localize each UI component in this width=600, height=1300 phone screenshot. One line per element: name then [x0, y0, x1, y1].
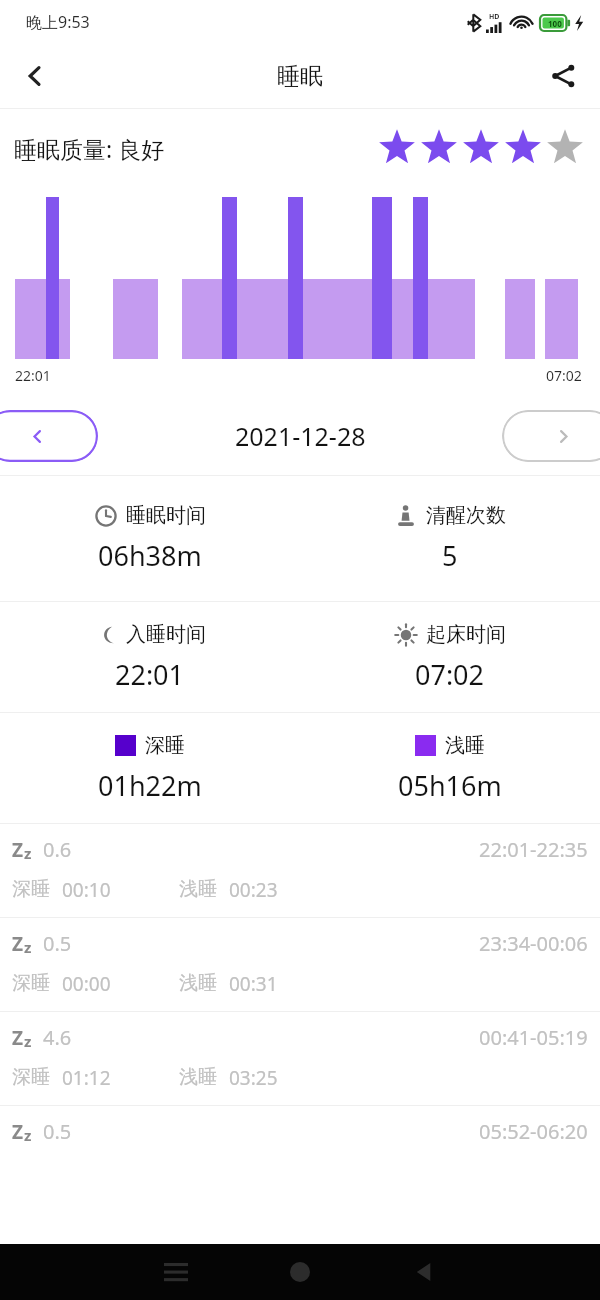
- staticText: 5: [442, 537, 458, 574]
- staticText: 睡眠时间: [126, 503, 206, 528]
- staticText: 深睡: [145, 733, 185, 758]
- button[interactable]: Z: [0, 1012, 600, 1105]
- staticText: 100: [548, 18, 562, 29]
- staticText: 07:02: [415, 656, 485, 693]
- button[interactable]: Back: [400, 1248, 448, 1296]
- staticText: 00:10: [62, 877, 111, 903]
- button[interactable]: Z: [0, 1106, 600, 1199]
- button[interactable]: Next day: [502, 410, 600, 462]
- button[interactable]: Share: [536, 49, 590, 103]
- staticText: 起床时间: [426, 622, 506, 647]
- staticText: 03:25: [229, 1065, 278, 1091]
- staticText: 4.6: [43, 1024, 72, 1051]
- staticText: 入睡时间: [126, 622, 206, 647]
- button[interactable]: Z: [0, 824, 600, 917]
- staticText: 05h16m: [398, 767, 502, 804]
- staticText: 00:41-05:19: [479, 1024, 588, 1051]
- staticText: Z: [12, 1025, 24, 1051]
- staticText: 睡眠质量: 良好: [14, 133, 165, 164]
- button[interactable]: 起床时间: [300, 602, 600, 712]
- button[interactable]: Z: [0, 918, 600, 1011]
- button[interactable]: 浅睡: [300, 713, 600, 823]
- staticText: HD: [489, 12, 500, 22]
- staticText: 深睡: [12, 971, 50, 995]
- button[interactable]: Home: [276, 1248, 324, 1296]
- button[interactable]: 深睡: [0, 713, 300, 823]
- button[interactable]: Back: [8, 49, 62, 103]
- staticText: 睡眠: [277, 62, 323, 91]
- staticText: 01h22m: [98, 767, 202, 804]
- staticText: 01:12: [62, 1065, 111, 1091]
- staticText: 2021-12-28: [235, 419, 366, 453]
- staticText: 晚上9:53: [26, 11, 90, 33]
- button[interactable]: 睡眠时间: [0, 476, 300, 601]
- staticText: 05:52-06:20: [479, 1118, 588, 1145]
- staticText: 0.5: [43, 930, 72, 957]
- staticText: 深睡: [12, 1065, 50, 1089]
- staticText: 0.6: [43, 836, 72, 863]
- staticText: 00:23: [229, 877, 278, 903]
- staticText: 07:02: [546, 366, 582, 385]
- staticText: 清醒次数: [426, 503, 506, 528]
- staticText: 06h38m: [98, 537, 202, 574]
- staticText: z: [24, 1031, 32, 1051]
- staticText: 浅睡: [179, 877, 217, 901]
- staticText: 浅睡: [445, 733, 485, 758]
- staticText: 23:34-00:06: [479, 930, 588, 957]
- staticText: 22:01-22:35: [479, 836, 588, 863]
- staticText: 浅睡: [179, 1065, 217, 1089]
- staticText: Z: [12, 837, 24, 863]
- button[interactable]: Recent apps: [152, 1248, 200, 1296]
- staticText: 0.5: [43, 1118, 72, 1145]
- staticText: Z: [12, 931, 24, 957]
- staticText: 22:01: [15, 366, 51, 385]
- button[interactable]: 清醒次数: [300, 476, 600, 601]
- staticText: z: [24, 1125, 32, 1145]
- staticText: Z: [12, 1119, 24, 1145]
- button[interactable]: Previous day: [0, 410, 98, 462]
- staticText: 22:01: [115, 656, 185, 693]
- staticText: z: [24, 937, 32, 957]
- staticText: z: [24, 843, 32, 863]
- staticText: 00:00: [62, 971, 111, 997]
- staticText: 深睡: [12, 877, 50, 901]
- button[interactable]: 入睡时间: [0, 602, 300, 712]
- staticText: 00:31: [229, 971, 278, 997]
- staticText: 浅睡: [179, 971, 217, 995]
